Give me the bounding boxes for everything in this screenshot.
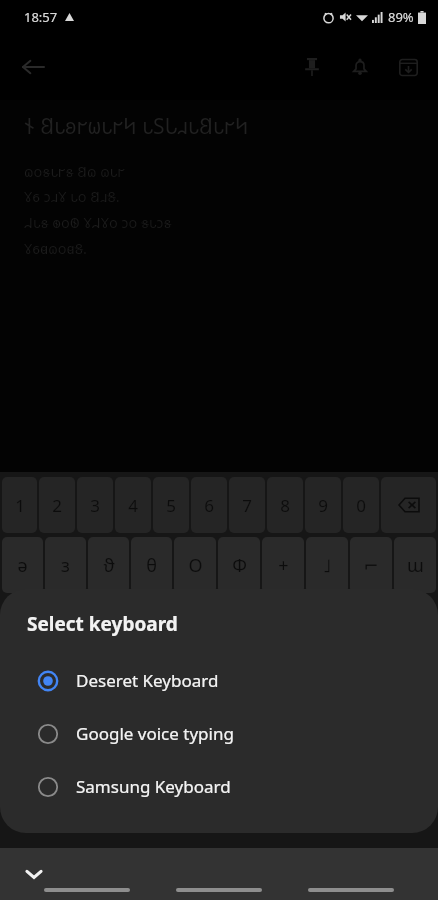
- staticText: Samsung Keyboard: [76, 775, 231, 798]
- staticText: 3: [90, 494, 100, 517]
- button[interactable]: Back: [10, 44, 56, 90]
- staticText: 4: [128, 494, 138, 517]
- staticText: Deseret Keyboard: [76, 669, 219, 692]
- staticText: Ф: [232, 553, 247, 578]
- button[interactable]: Undo: [160, 474, 208, 522]
- button[interactable]: More options: [384, 476, 428, 520]
- staticText: ⌐: [363, 555, 379, 576]
- staticText: 6: [204, 494, 214, 517]
- button[interactable]: 8: [267, 477, 303, 533]
- button[interactable]: Archive: [384, 43, 432, 91]
- staticText: ϑ: [103, 553, 115, 578]
- staticText: ɜ: [61, 553, 70, 578]
- staticText: 7: [242, 494, 252, 517]
- button[interactable]: ə: [2, 537, 43, 593]
- staticText: 9: [318, 494, 328, 517]
- staticText: ɯ: [407, 553, 424, 578]
- button[interactable]: [44, 888, 130, 892]
- staticText: ˩: [323, 553, 331, 578]
- button[interactable]: Add: [8, 476, 52, 520]
- staticText: θ: [146, 553, 157, 578]
- button[interactable]: 5: [153, 477, 189, 533]
- button[interactable]: ɯ: [394, 537, 436, 593]
- button[interactable]: Google voice typing: [0, 707, 438, 760]
- button[interactable]: Backspace: [381, 477, 436, 533]
- button[interactable]: θ: [131, 537, 172, 593]
- button[interactable]: Ф: [218, 537, 260, 593]
- staticText: 𐐿𐐬𐑅𐑊𐐲𐑅 𐐒𐐿 𐐿𐑊𐐲 𐐜𐑆 𐑋𐐯𐐜 𐑊𐐬 𐐒𐐯𐐝. 𐐇𐑊𐑅 𐑏𐐬𐐧 𐐜𐐇𐐜…: [24, 161, 172, 259]
- button[interactable]: Pin: [288, 43, 336, 91]
- staticText: 1: [15, 494, 25, 517]
- staticText: Google voice typing: [76, 722, 234, 745]
- staticText: ə: [17, 553, 28, 578]
- staticText: O: [188, 553, 203, 578]
- button[interactable]: Samsung Keyboard: [0, 760, 438, 813]
- button[interactable]: Reminder: [336, 43, 384, 91]
- staticText: 2: [52, 494, 62, 517]
- staticText: 8: [280, 494, 290, 517]
- button[interactable]: Deseret Keyboard: [0, 654, 438, 707]
- staticText: +: [278, 553, 289, 578]
- button[interactable]: O: [174, 537, 216, 593]
- staticText: 0: [356, 494, 366, 517]
- button[interactable]: 0: [343, 477, 379, 533]
- button[interactable]: Hide keyboard: [12, 852, 56, 896]
- staticText: 5: [166, 494, 176, 517]
- button[interactable]: [308, 888, 394, 892]
- staticText: 89%: [388, 8, 414, 26]
- button[interactable]: 9: [305, 477, 341, 533]
- staticText: Select keyboard: [27, 611, 178, 637]
- button[interactable]: [176, 888, 262, 892]
- staticText: 18:57: [24, 8, 58, 26]
- button[interactable]: Redo: [230, 474, 278, 522]
- staticText: 𐐆 𐐒𐑊𐐪𐐲𐐶𐑊𐐲𐐤 𐑊𐐠𐐢𐐯𐑊𐐒𐑊𐐲𐐤: [24, 112, 249, 141]
- button[interactable]: ϑ: [88, 537, 129, 593]
